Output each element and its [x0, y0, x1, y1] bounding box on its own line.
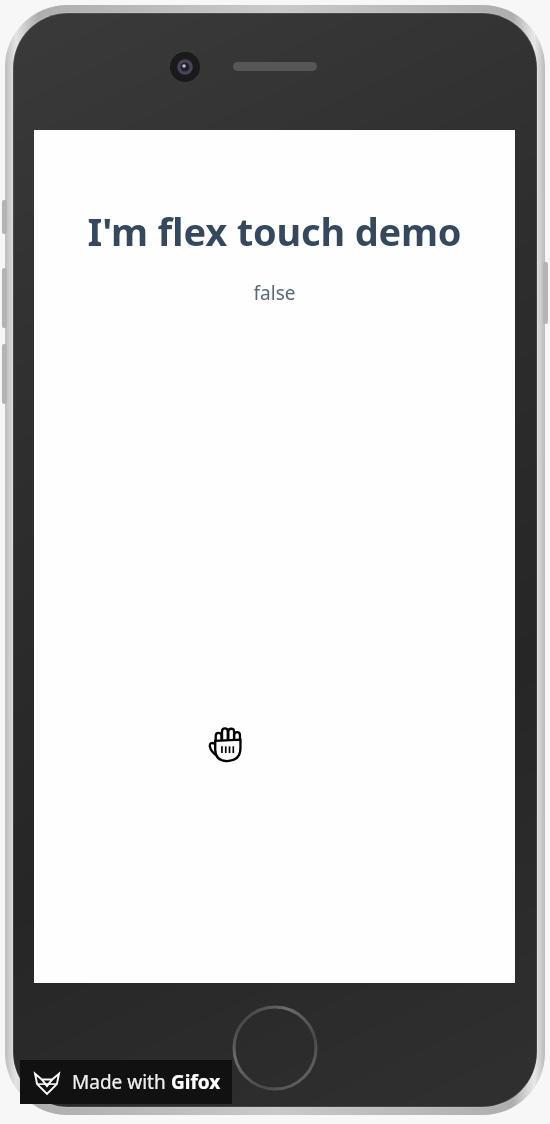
button[interactable]: Gifox logo: [20, 1060, 232, 1104]
button[interactable]: I'm flex touch demo: [34, 205, 515, 257]
staticText: false: [34, 280, 515, 306]
staticText: Made with: [72, 1069, 171, 1095]
other: Gifox logo: [34, 1069, 60, 1095]
other: Pointer: [206, 722, 248, 764]
staticText: Gifox: [171, 1069, 221, 1095]
